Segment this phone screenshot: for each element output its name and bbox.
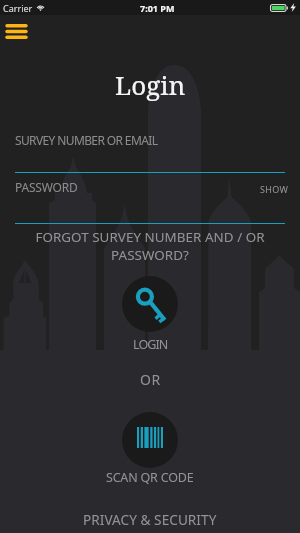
button[interactable]: Login xyxy=(122,276,178,332)
staticText: Login xyxy=(115,67,186,102)
staticText: Carrier xyxy=(3,2,33,14)
staticText: 7:01 PM xyxy=(140,2,175,14)
staticText: PASSWORD xyxy=(15,179,78,195)
staticText: SURVEY NUMBER OR EMAIL xyxy=(15,132,158,148)
staticText: SHOW xyxy=(260,183,289,195)
button[interactable]: FORGOT SURVEY NUMBER AND / OR PASSWORD? xyxy=(30,228,270,264)
staticText: SCAN QR CODE xyxy=(106,469,194,486)
staticText: PRIVACY & SECURITY xyxy=(83,510,217,529)
button[interactable]: Menu xyxy=(2,17,30,45)
staticText: FORGOT SURVEY NUMBER AND / OR PASSWORD? xyxy=(30,228,270,264)
button[interactable]: SHOW xyxy=(260,183,289,195)
button[interactable]: PRIVACY & SECURITY xyxy=(83,510,217,529)
staticText: OR xyxy=(140,370,161,389)
button[interactable]: Scan QR code xyxy=(122,412,178,468)
staticText: LOGIN xyxy=(133,336,168,353)
